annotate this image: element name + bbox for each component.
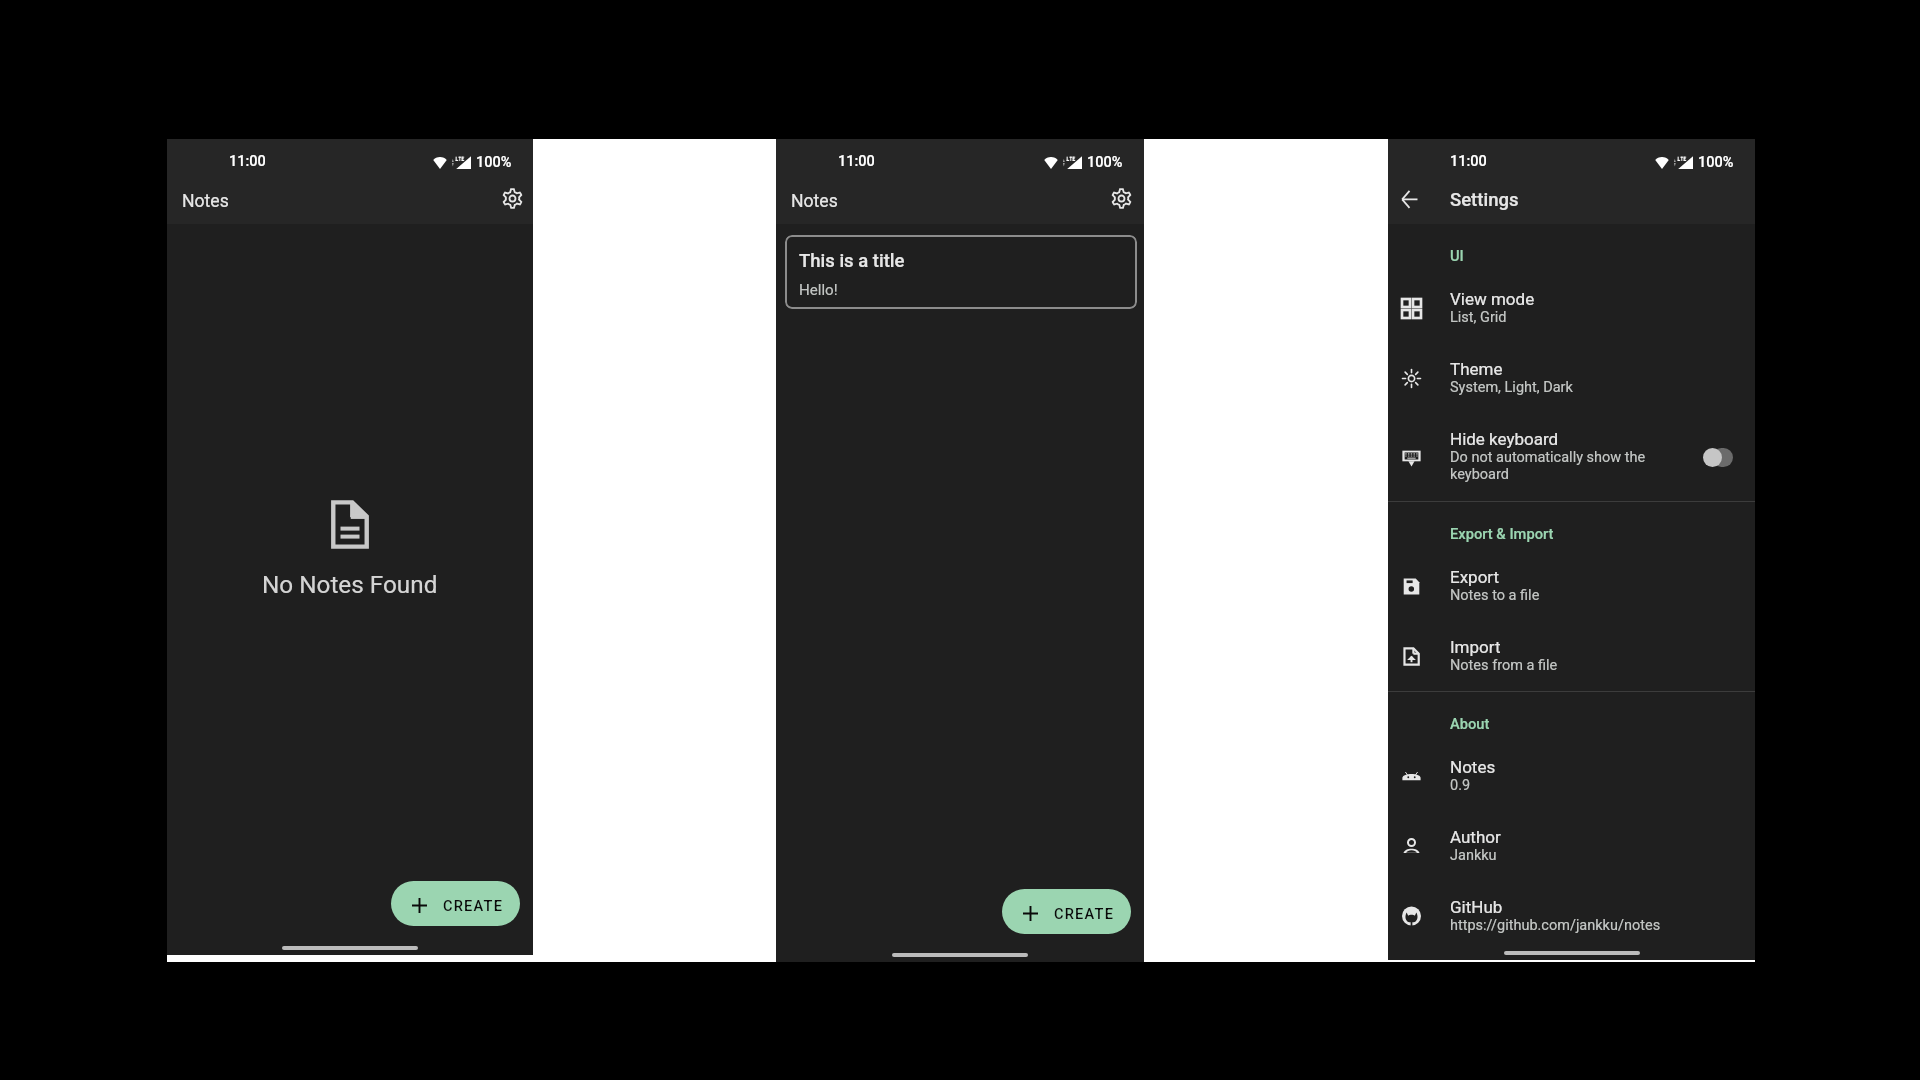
button[interactable]: Author xyxy=(1388,811,1755,881)
staticText: Do not automatically show the keyboard xyxy=(1450,449,1675,483)
staticText: 100% xyxy=(1087,154,1123,171)
button[interactable]: Export xyxy=(1388,551,1755,621)
staticText: GitHub xyxy=(1450,897,1503,917)
button[interactable]: Import xyxy=(1388,621,1755,691)
staticText: 100% xyxy=(476,154,512,171)
staticText: Notes from a file xyxy=(1450,657,1558,674)
button[interactable]: CREATE xyxy=(391,881,520,926)
staticText: About xyxy=(1450,715,1490,732)
button[interactable]: This is a title xyxy=(785,235,1137,309)
staticText: This is a title xyxy=(799,250,905,272)
button[interactable]: Notes xyxy=(1388,741,1755,811)
staticText: 11:00 xyxy=(229,153,266,170)
button[interactable]: Settings xyxy=(496,182,528,214)
staticText: CREATE xyxy=(443,897,504,914)
button[interactable]: Hide keyboard xyxy=(1388,413,1755,501)
staticText: Hello! xyxy=(799,281,838,299)
staticText: Import xyxy=(1450,637,1501,657)
staticText: Settings xyxy=(1450,189,1519,211)
staticText: CREATE xyxy=(1054,905,1115,922)
button[interactable]: Back xyxy=(1392,182,1426,216)
button[interactable]: Theme xyxy=(1388,343,1755,413)
staticText: 0.9 xyxy=(1450,777,1471,794)
button[interactable]: GitHub xyxy=(1388,881,1755,951)
staticText: Jankku xyxy=(1450,847,1497,864)
staticText: System, Light, Dark xyxy=(1450,379,1573,396)
staticText: View mode xyxy=(1450,289,1535,309)
staticText: UI xyxy=(1450,247,1464,264)
button[interactable]: View mode xyxy=(1388,273,1755,343)
staticText: Notes to a file xyxy=(1450,587,1540,604)
button[interactable]: Hide keyboard toggle xyxy=(1703,447,1733,468)
staticText: List, Grid xyxy=(1450,309,1507,326)
staticText: 100% xyxy=(1698,154,1734,171)
staticText: Author xyxy=(1450,827,1501,847)
button[interactable]: CREATE xyxy=(1002,889,1131,934)
staticText: https://github.com/jankku/notes xyxy=(1450,917,1661,934)
staticText: Hide keyboard xyxy=(1450,429,1559,449)
staticText: Export xyxy=(1450,567,1500,587)
button[interactable]: Settings xyxy=(1105,182,1137,214)
staticText: Notes xyxy=(791,191,838,212)
staticText: Notes xyxy=(182,191,229,212)
staticText: 11:00 xyxy=(838,153,875,170)
staticText: Theme xyxy=(1450,359,1503,379)
staticText: No Notes Found xyxy=(262,570,438,598)
staticText: 11:00 xyxy=(1450,153,1487,170)
staticText: Notes xyxy=(1450,757,1496,777)
staticText: Export & Import xyxy=(1450,525,1554,542)
